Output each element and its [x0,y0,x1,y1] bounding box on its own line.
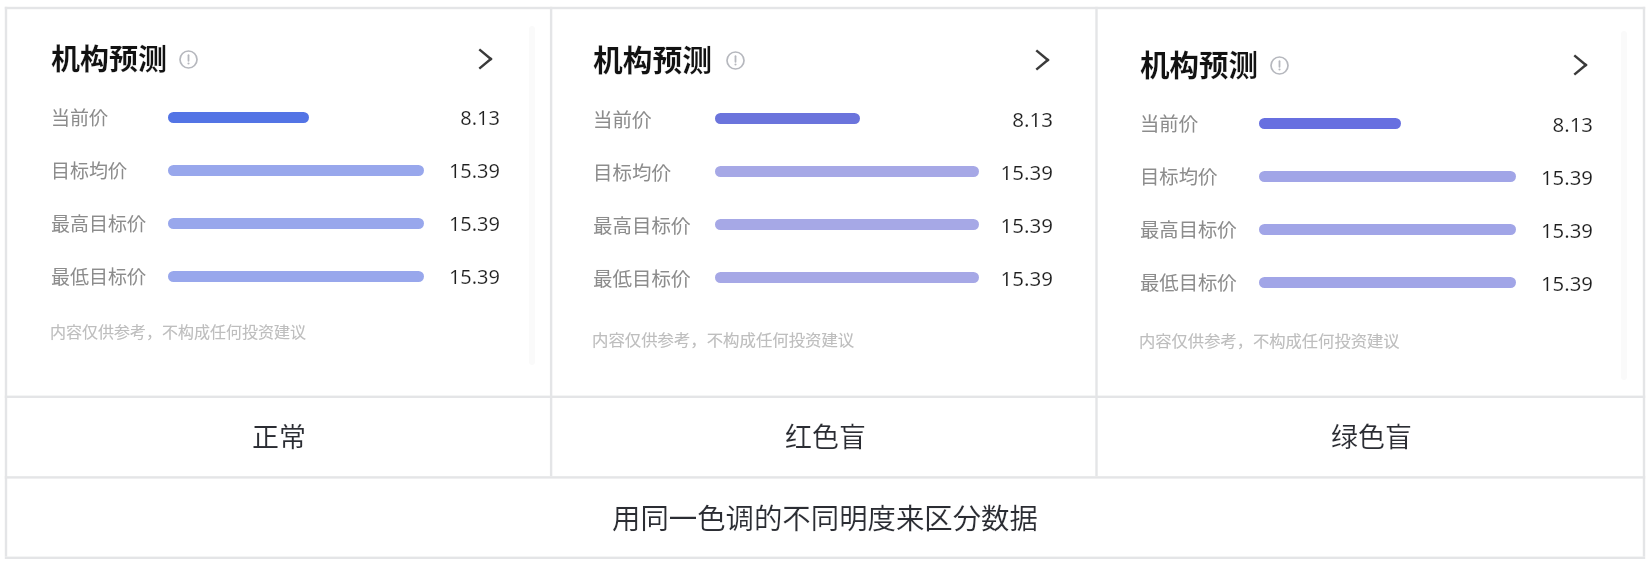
staticText: 目标均价 [51,156,128,184]
staticText: 内容仅供参考，不构成任何投资建议 [1139,328,1400,352]
staticText: 8.13 [1012,105,1053,133]
button[interactable]: 最低目标价 [553,251,1097,304]
other: 说明 [179,50,198,69]
button[interactable]: 最低目标价 [1099,256,1643,309]
staticText: 15.39 [1000,264,1053,292]
staticText: 正常 [252,416,306,455]
staticText: 最高目标价 [51,209,147,237]
staticText: 15.39 [448,263,500,290]
button[interactable]: 当前价 [7,91,551,144]
button[interactable]: 目标均价 [1099,150,1643,203]
staticText: 当前价 [1140,109,1198,137]
staticText: 当前价 [51,103,109,131]
other: 查看详情 [1036,50,1049,70]
other: 说明 [1270,56,1289,75]
staticText: 机构预测 [1140,42,1259,82]
staticText: 15.39 [1000,211,1053,239]
staticText: 8.13 [460,104,500,131]
button[interactable]: 目标均价 [553,145,1097,198]
staticText: 15.39 [1540,216,1593,244]
staticText: 最高目标价 [593,210,691,238]
button[interactable]: 最高目标价 [553,198,1097,251]
staticText: 目标均价 [593,157,671,185]
button[interactable]: 红色盲 [553,399,1097,478]
button[interactable]: 目标均价 [7,144,551,197]
staticText: 内容仅供参考，不构成任何投资建议 [592,327,855,351]
button[interactable]: 机构预测 [1099,45,1643,85]
staticText: 15.39 [1540,163,1593,191]
staticText: 用同一色调的不同明度来区分数据 [612,496,1038,537]
staticText: 红色盲 [785,416,866,455]
staticText: 15.39 [1540,269,1593,297]
staticText: 机构预测 [51,36,168,76]
button[interactable]: 机构预测 [7,39,551,79]
staticText: 目标均价 [1140,162,1218,190]
button[interactable]: 绿色盲 [1099,399,1643,478]
other: 查看详情 [1574,55,1587,75]
other: 说明 [726,51,745,70]
staticText: 最低目标价 [593,263,691,291]
button[interactable]: 当前价 [553,92,1097,145]
button[interactable]: 最低目标价 [7,250,551,303]
staticText: 8.13 [1552,110,1593,138]
staticText: 15.39 [448,210,500,237]
staticText: 15.39 [448,157,500,184]
staticText: 当前价 [593,104,652,132]
button[interactable]: 机构预测 [553,40,1097,80]
staticText: 机构预测 [593,37,712,77]
staticText: 15.39 [1000,158,1053,186]
staticText: 最低目标价 [51,262,147,290]
staticText: 绿色盲 [1331,416,1412,455]
other: 查看详情 [479,49,492,69]
staticText: 最低目标价 [1140,268,1237,296]
button[interactable]: 正常 [7,399,551,478]
button[interactable]: 最高目标价 [7,197,551,250]
button[interactable]: 当前价 [1099,97,1643,150]
staticText: 最高目标价 [1140,215,1237,243]
staticText: 内容仅供参考，不构成任何投资建议 [50,319,307,342]
button[interactable]: 最高目标价 [1099,203,1643,256]
